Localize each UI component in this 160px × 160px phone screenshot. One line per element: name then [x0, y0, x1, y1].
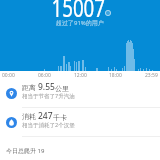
staticText: 23:59 [145, 72, 158, 79]
staticText: 消耗 [22, 112, 38, 122]
staticText: 相当于节省了7升汽油 [22, 92, 75, 100]
staticText: 00:00 [2, 72, 15, 79]
staticText: 9.55 [38, 81, 55, 93]
staticText: 15007 [51, 0, 105, 24]
staticText: 06:00 [38, 72, 51, 79]
staticText: 今日总爬升 19 [6, 147, 45, 155]
staticText: 超过了91%的用户 [56, 19, 104, 27]
staticText: 距离 [22, 83, 38, 93]
staticText: 公里 [55, 84, 69, 93]
staticText: 千卡 [53, 113, 67, 122]
staticText: 相当于消耗了2个汉堡 [22, 121, 75, 129]
button[interactable]: Step info [105, 10, 111, 16]
button[interactable]: 距离 [0, 79, 160, 107]
staticText: 247 [38, 110, 53, 122]
button[interactable]: 今日总爬升 19 [0, 137, 160, 160]
button[interactable]: 消耗 [0, 108, 160, 136]
staticText: 18:00 [109, 72, 122, 79]
staticText: 12:00 [74, 72, 87, 79]
